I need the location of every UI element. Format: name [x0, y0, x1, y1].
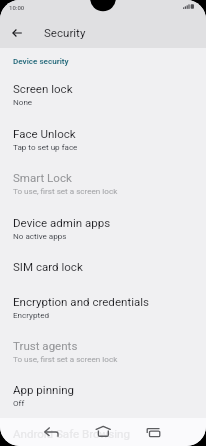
staticText: No active apps: [13, 231, 67, 240]
staticText: Trust agents: [13, 339, 78, 353]
button[interactable]: Recent apps: [143, 421, 164, 442]
staticText: Smart Lock: [13, 171, 72, 185]
staticText: Device admin apps: [13, 216, 111, 230]
button[interactable]: Face Unlock: [0, 116, 206, 161]
button[interactable]: Smart Lock: [0, 161, 206, 205]
staticText: Encrypted: [13, 310, 49, 319]
button[interactable]: Encryption and credentials: [0, 284, 206, 329]
button[interactable]: SIM card lock: [0, 250, 206, 284]
staticText: 10:00: [9, 4, 25, 11]
staticText: App pinning: [13, 383, 75, 397]
staticText: Face Unlock: [13, 127, 76, 141]
staticText: SIM card lock: [13, 260, 83, 274]
button[interactable]: Back: [41, 421, 62, 442]
staticText: To use, first set a screen lock: [13, 186, 118, 195]
button[interactable]: Trust agents: [0, 329, 206, 373]
staticText: None: [13, 97, 33, 106]
button[interactable]: Screen lock: [0, 72, 206, 116]
staticText: Tap to set up face: [13, 142, 78, 151]
button[interactable]: Navigate up: [5, 25, 28, 41]
staticText: Security: [44, 26, 86, 40]
staticText: Android Safe Browsing: [13, 427, 130, 441]
button[interactable]: App pinning: [0, 373, 206, 417]
staticText: Device security: [13, 56, 69, 65]
staticText: Encryption and credentials: [13, 295, 150, 309]
button[interactable]: Home: [93, 421, 114, 442]
staticText: Off: [13, 398, 25, 407]
button[interactable]: Device admin apps: [0, 205, 206, 250]
staticText: To use, first set a screen lock: [13, 354, 118, 363]
staticText: Screen lock: [13, 82, 73, 96]
